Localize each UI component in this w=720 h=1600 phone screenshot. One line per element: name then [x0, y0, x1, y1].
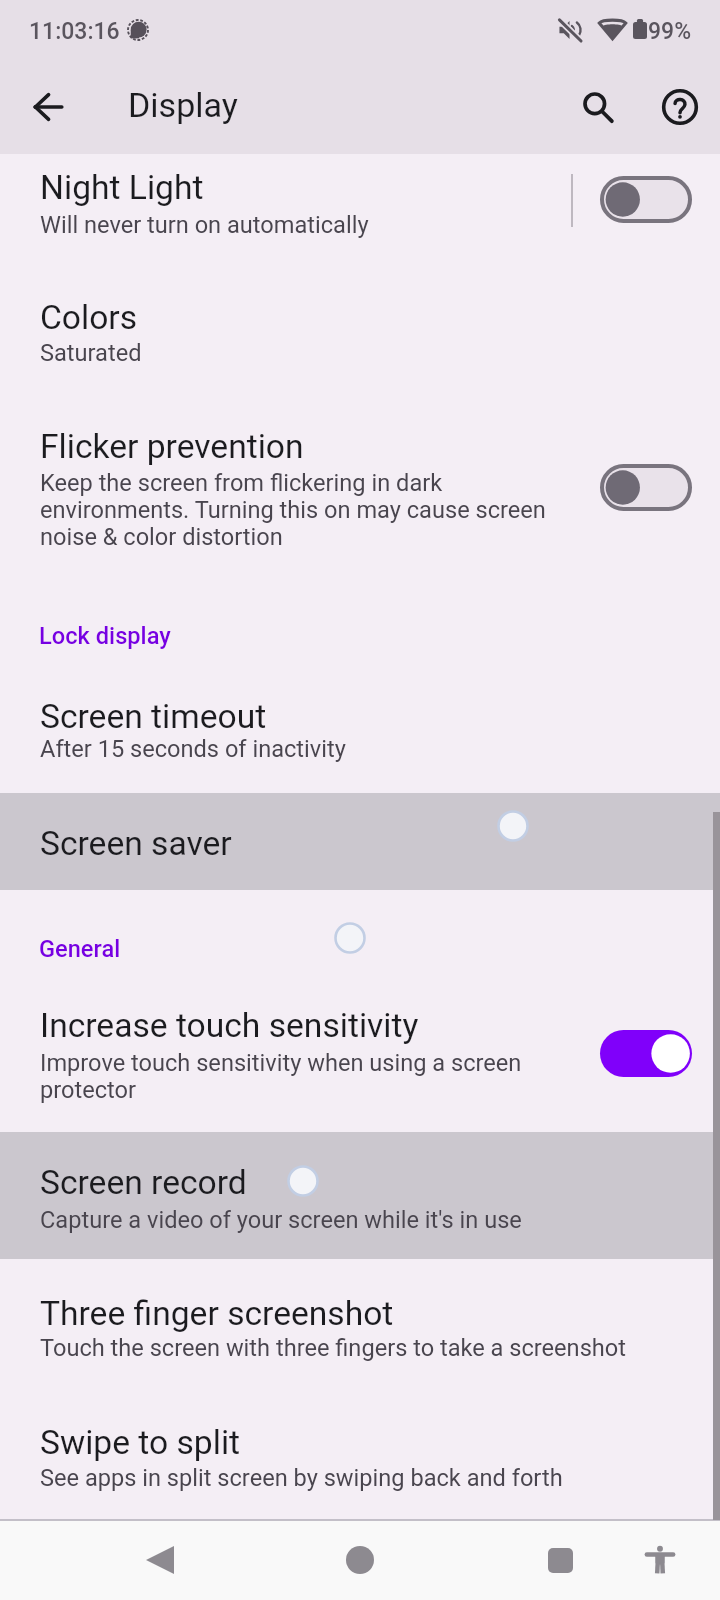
staticText: Flicker prevention	[40, 427, 304, 466]
staticText: Will never turn on automatically	[40, 211, 600, 238]
button[interactable]: Night Light, off	[600, 176, 692, 223]
staticText: Saturated	[40, 339, 600, 366]
staticText: 99%	[648, 18, 692, 45]
button[interactable]: Flicker prevention	[0, 414, 720, 599]
staticText: See apps in split screen by swiping back…	[40, 1464, 660, 1491]
staticText: Touch the screen with three fingers to t…	[40, 1334, 660, 1361]
staticText: Three finger screenshot	[40, 1294, 394, 1333]
staticText: Improve touch sensitivity when using a s…	[40, 1049, 550, 1103]
button[interactable]: Help	[648, 75, 712, 139]
staticText: Keep the screen from flickering in dark …	[40, 469, 560, 550]
button[interactable]: Navigate up	[16, 75, 80, 139]
staticText: Screen saver	[40, 824, 232, 863]
button[interactable]: Home	[328, 1528, 392, 1592]
button[interactable]: Search	[566, 75, 630, 139]
staticText: Screen timeout	[40, 697, 267, 736]
button[interactable]: Screen saver	[0, 793, 720, 890]
button[interactable]: Increase touch sensitivity, on	[600, 1030, 692, 1077]
button[interactable]: Three finger screenshot	[0, 1259, 720, 1389]
staticText: Capture a video of your screen while it'…	[40, 1206, 600, 1233]
staticText: Colors	[40, 298, 138, 337]
button[interactable]: Colors	[0, 284, 720, 414]
button[interactable]: Accessibility	[628, 1528, 692, 1592]
button[interactable]: Screen record	[0, 1132, 720, 1259]
button[interactable]: Recent apps	[528, 1528, 592, 1592]
button[interactable]: Swipe to split	[0, 1389, 720, 1520]
staticText: Display	[128, 85, 238, 125]
staticText: 11:03:16	[29, 18, 120, 45]
button[interactable]: Back	[128, 1528, 192, 1592]
staticText: Night Light	[40, 168, 204, 207]
button[interactable]: Night Light	[0, 154, 720, 284]
staticText: After 15 seconds of inactivity	[40, 735, 600, 762]
button[interactable]: Flicker prevention, off	[600, 464, 692, 511]
button[interactable]: Screen timeout	[0, 665, 720, 793]
staticText: Swipe to split	[40, 1423, 241, 1462]
button[interactable]: Increase touch sensitivity	[0, 995, 720, 1132]
staticText: Increase touch sensitivity	[40, 1006, 419, 1045]
staticText: Screen record	[40, 1163, 247, 1202]
staticText: General	[39, 935, 121, 963]
staticText: Lock display	[39, 622, 171, 650]
